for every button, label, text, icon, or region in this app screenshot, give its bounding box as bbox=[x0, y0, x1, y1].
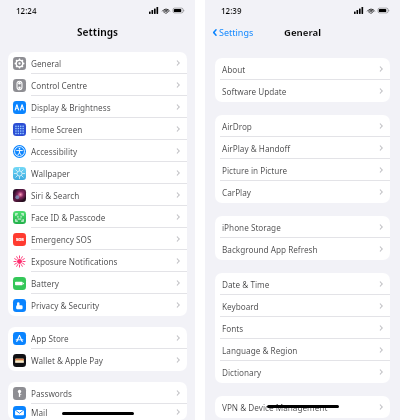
button[interactable]: General bbox=[8, 52, 187, 74]
button[interactable]: Background App Refresh bbox=[215, 238, 390, 260]
staticText: Face ID & Passcode bbox=[31, 212, 175, 223]
staticText: 12:24 bbox=[16, 5, 37, 16]
staticText: General bbox=[284, 26, 321, 39]
staticText: Passwords bbox=[31, 388, 175, 399]
staticText: 12:39 bbox=[221, 5, 242, 16]
staticText: iPhone Storage bbox=[222, 222, 378, 233]
button[interactable]: Software Update bbox=[215, 80, 390, 102]
staticText: SOS bbox=[16, 237, 24, 243]
staticText: Emergency SOS bbox=[31, 234, 175, 245]
staticText: Privacy & Security bbox=[31, 300, 175, 311]
button[interactable]: Wallpaper bbox=[8, 162, 187, 184]
staticText: General bbox=[31, 58, 175, 69]
staticText: Date & Time bbox=[222, 279, 378, 290]
staticText: Keyboard bbox=[222, 301, 378, 312]
button[interactable]: Siri & Search bbox=[8, 184, 187, 206]
staticText: App Store bbox=[31, 333, 175, 344]
button[interactable]: Keyboard bbox=[215, 295, 390, 317]
staticText: Picture in Picture bbox=[222, 165, 378, 176]
button[interactable]: Exposure Notifications bbox=[8, 250, 187, 272]
staticText: Siri & Search bbox=[31, 190, 175, 201]
staticText: Display & Brightness bbox=[31, 102, 175, 113]
staticText: Wallpaper bbox=[31, 168, 175, 179]
button[interactable]: VPN & Device Management bbox=[215, 396, 390, 418]
staticText: Settings bbox=[77, 25, 118, 39]
staticText: Fonts bbox=[222, 323, 378, 334]
button[interactable]: Date & Time bbox=[215, 273, 390, 295]
button[interactable]: About bbox=[215, 58, 390, 80]
button[interactable]: Fonts bbox=[215, 317, 390, 339]
button[interactable]: Passwords bbox=[8, 382, 187, 404]
button[interactable]: Dictionary bbox=[215, 361, 390, 383]
button[interactable]: Back to Settings bbox=[211, 26, 254, 38]
button[interactable]: Wallet & Apple Pay bbox=[8, 349, 187, 371]
staticText: VPN & Device Management bbox=[222, 402, 378, 413]
button[interactable]: Display & Brightness bbox=[8, 96, 187, 118]
staticText: Language & Region bbox=[222, 345, 378, 356]
staticText: AirPlay & Handoff bbox=[222, 143, 378, 154]
button[interactable]: Battery bbox=[8, 272, 187, 294]
staticText: Battery bbox=[31, 278, 175, 289]
button[interactable]: Face ID & Passcode bbox=[8, 206, 187, 228]
button[interactable]: Home Screen bbox=[8, 118, 187, 140]
staticText: Software Update bbox=[222, 86, 378, 97]
button[interactable]: Accessibility bbox=[8, 140, 187, 162]
staticText: Control Centre bbox=[31, 80, 175, 91]
staticText: Dictionary bbox=[222, 367, 378, 378]
staticText: About bbox=[222, 64, 378, 75]
staticText: Background App Refresh bbox=[222, 244, 378, 255]
button[interactable]: SOS bbox=[8, 228, 187, 250]
staticText: Wallet & Apple Pay bbox=[31, 355, 175, 366]
staticText: Home Screen bbox=[31, 124, 175, 135]
button[interactable]: AirPlay & Handoff bbox=[215, 137, 390, 159]
button[interactable]: App Store bbox=[8, 327, 187, 349]
button[interactable]: Language & Region bbox=[215, 339, 390, 361]
button[interactable]: iPhone Storage bbox=[215, 216, 390, 238]
button[interactable]: AirDrop bbox=[215, 115, 390, 137]
button[interactable]: Privacy & Security bbox=[8, 294, 187, 316]
staticText: Mail bbox=[31, 407, 175, 418]
button[interactable]: Mail bbox=[8, 404, 187, 420]
button[interactable]: Control Centre bbox=[8, 74, 187, 96]
staticText: Exposure Notifications bbox=[31, 256, 175, 267]
staticText: Settings bbox=[219, 26, 254, 38]
button[interactable]: CarPlay bbox=[215, 181, 390, 203]
staticText: Accessibility bbox=[31, 146, 175, 157]
button[interactable]: Picture in Picture bbox=[215, 159, 390, 181]
staticText: CarPlay bbox=[222, 187, 378, 198]
staticText: AirDrop bbox=[222, 121, 378, 132]
